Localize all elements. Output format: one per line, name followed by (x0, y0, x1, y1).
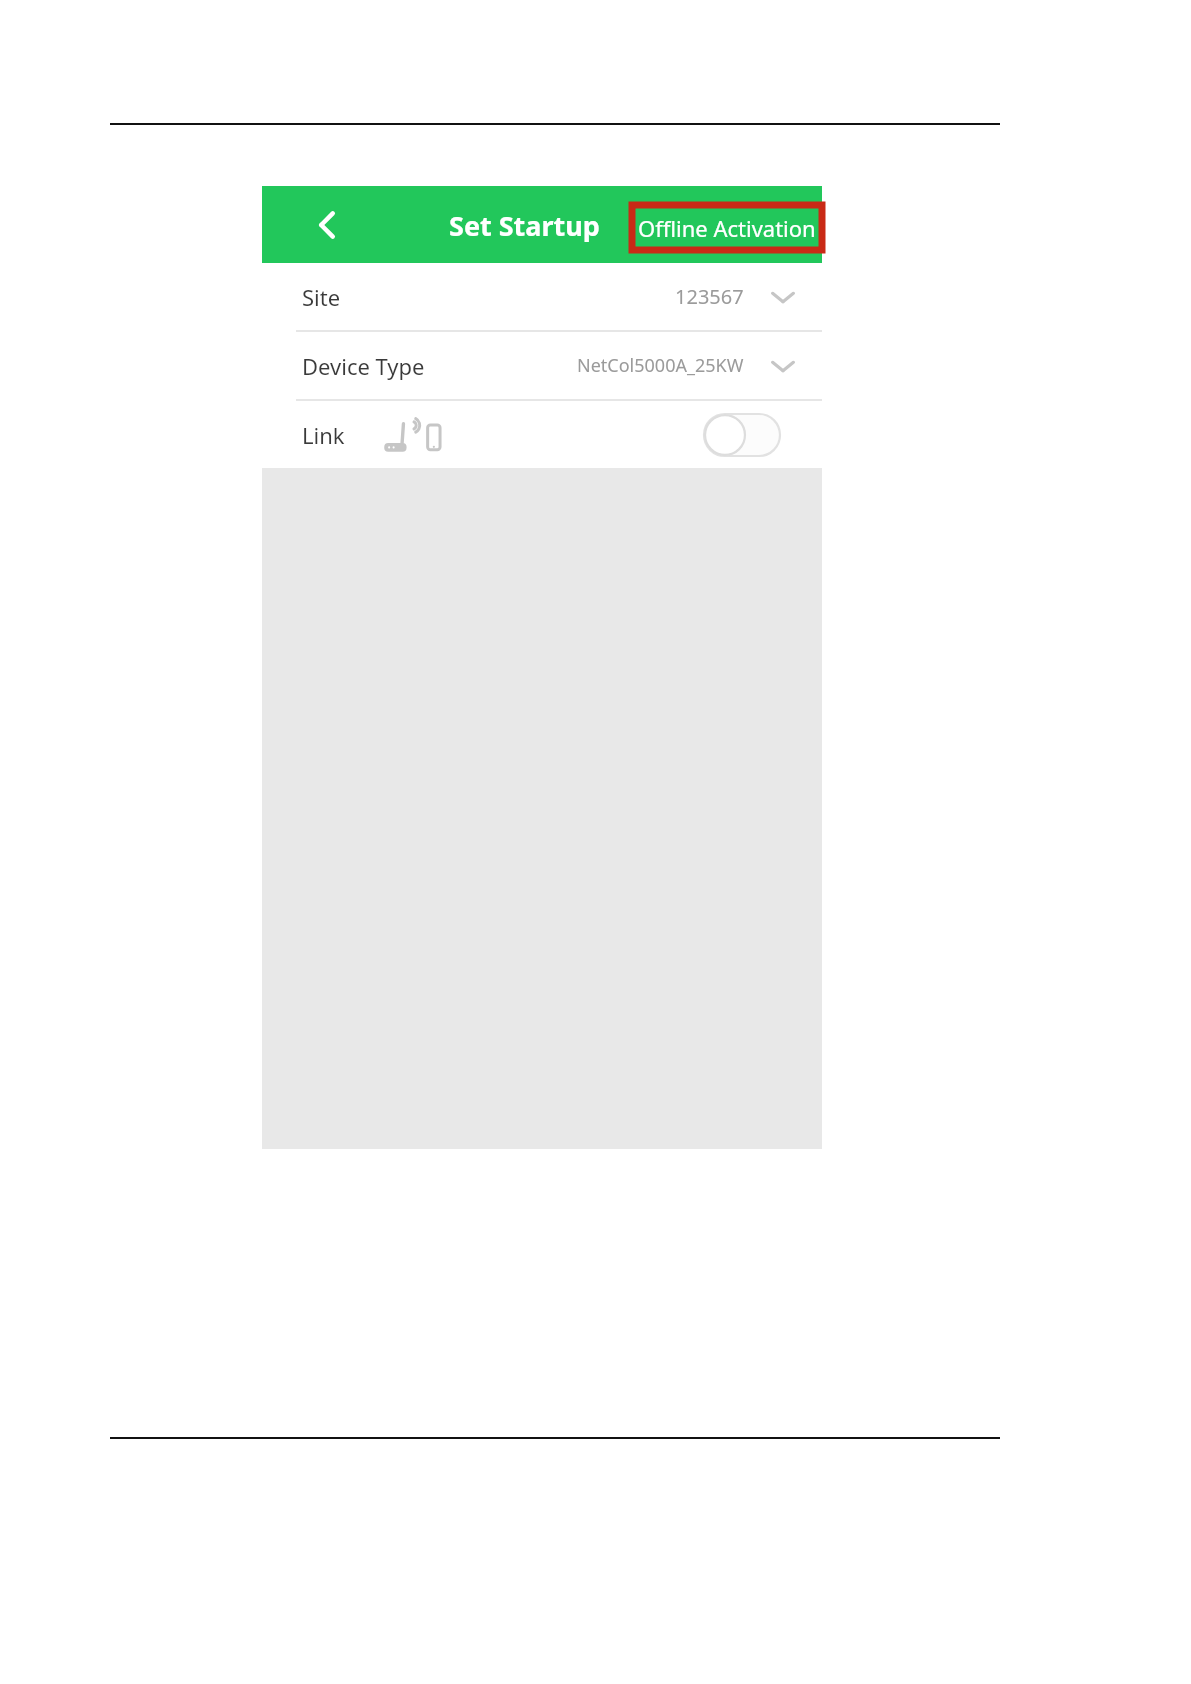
button[interactable]: Device Type (262, 332, 822, 399)
button[interactable]: Offline Activation (632, 205, 822, 250)
staticText: NetCol5000A_25KW (577, 353, 744, 378)
staticText: Link (302, 420, 345, 450)
staticText: 123567 (675, 283, 744, 310)
button[interactable]: Site (262, 263, 822, 330)
button[interactable]: Link toggle (704, 414, 780, 456)
staticText: Offline Activation (638, 213, 816, 243)
staticText: Site (302, 282, 341, 312)
staticText: Set Startup (449, 207, 600, 244)
button[interactable]: Back (304, 201, 352, 249)
staticText: Device Type (302, 351, 425, 381)
